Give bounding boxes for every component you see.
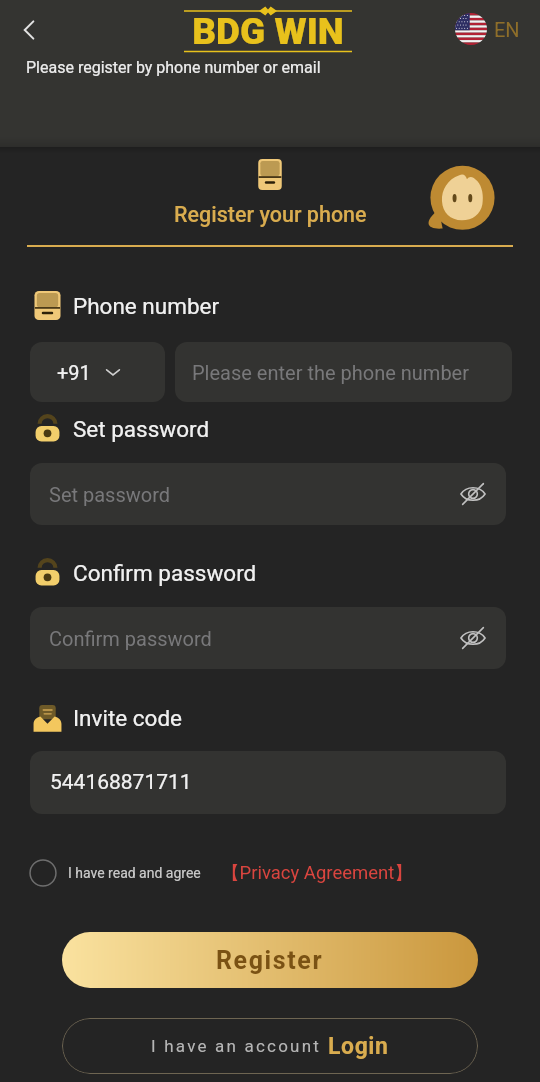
staticText: Invite code <box>73 705 183 731</box>
button[interactable]: Customer service <box>428 163 497 237</box>
button[interactable]: 544168871711 <box>30 751 506 814</box>
button[interactable]: Show password <box>456 477 490 511</box>
staticText: Confirm password <box>73 560 257 586</box>
staticText: Phone number <box>73 293 220 319</box>
staticText: BDG WIN <box>184 10 352 53</box>
button[interactable]: Set password <box>30 463 506 525</box>
staticText: Set password <box>73 416 210 442</box>
button[interactable]: +91 <box>30 342 165 402</box>
staticText: I have read and agree <box>68 865 201 881</box>
button[interactable]: Show password <box>456 621 490 655</box>
staticText: +91 <box>57 361 91 384</box>
staticText: Login <box>328 1033 389 1060</box>
staticText: Register your phone <box>174 202 367 227</box>
staticText: 544168871711 <box>50 770 192 795</box>
button[interactable]: Agree to terms <box>27 857 58 888</box>
button[interactable]: Register your phone <box>0 199 540 229</box>
staticText: Register <box>216 946 324 975</box>
button[interactable]: Confirm password <box>30 607 506 669</box>
staticText: Please enter the phone number <box>192 361 470 384</box>
staticText: Set password <box>49 483 456 506</box>
button[interactable]: Please enter the phone number <box>175 342 512 402</box>
staticText: Please register by phone number or email <box>26 58 321 77</box>
staticText: I have an account <box>151 1036 328 1056</box>
button[interactable]: EN <box>450 8 525 50</box>
button[interactable]: Back <box>8 8 52 52</box>
staticText: EN <box>494 18 520 41</box>
staticText: Confirm password <box>49 627 456 650</box>
button[interactable]: 【Privacy Agreement】 <box>221 861 413 884</box>
button[interactable]: Register <box>62 932 478 988</box>
button[interactable]: I have an account <box>62 1018 478 1074</box>
